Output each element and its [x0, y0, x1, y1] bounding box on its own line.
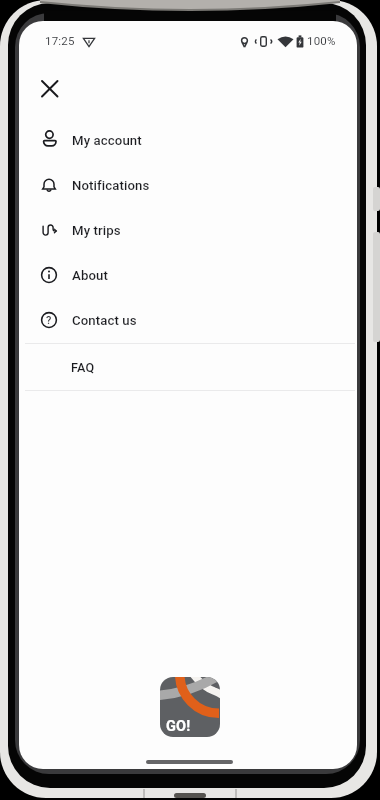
staticText: 100%	[307, 34, 336, 47]
staticText: My trips	[72, 223, 121, 238]
button[interactable]: My account	[25, 118, 350, 162]
staticText: 17:25	[45, 34, 75, 47]
button[interactable]: ?	[25, 298, 350, 342]
button[interactable]: Notifications	[25, 163, 350, 207]
staticText: Notifications	[72, 178, 150, 193]
button[interactable]: About	[25, 253, 350, 297]
staticText: About	[72, 268, 108, 283]
staticText: Contact us	[72, 313, 137, 328]
button[interactable]: FAQ	[25, 344, 355, 390]
staticText: FAQ	[71, 360, 95, 375]
button[interactable]	[33, 72, 67, 106]
staticText: GO!	[166, 718, 191, 735]
staticText: ?	[46, 314, 52, 327]
staticText: My account	[72, 133, 142, 148]
button[interactable]: My trips	[25, 208, 350, 252]
